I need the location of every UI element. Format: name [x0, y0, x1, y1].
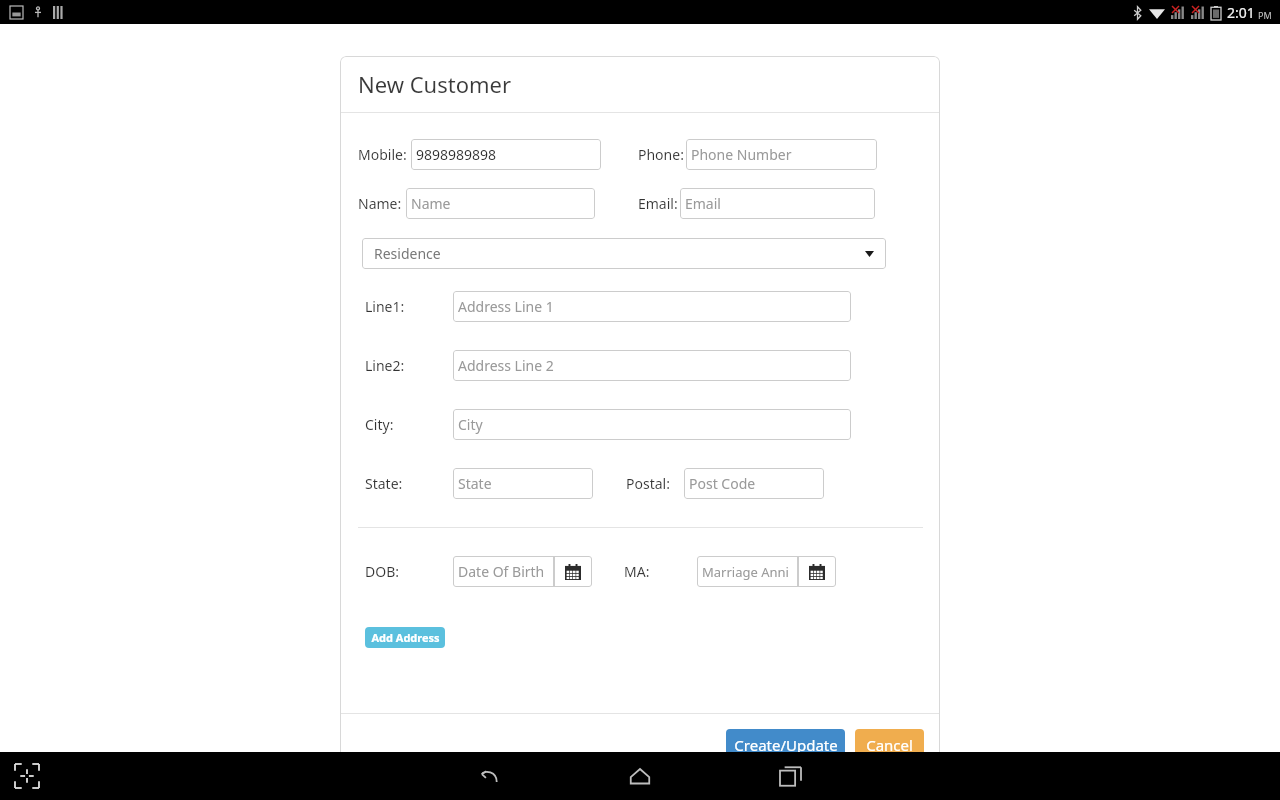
button[interactable]: Name — [406, 188, 595, 219]
staticText: PM — [1258, 9, 1272, 21]
staticText: City — [458, 415, 483, 434]
button[interactable]: City — [453, 409, 851, 440]
button[interactable]: Home — [617, 753, 663, 799]
button[interactable]: Fit to screen — [10, 759, 44, 793]
staticText: DOB: — [365, 562, 400, 581]
button[interactable]: Phone Number — [686, 139, 877, 170]
button[interactable]: Pick date — [798, 556, 836, 587]
staticText: 2:01 — [1227, 3, 1255, 22]
button[interactable]: Marriage Anni — [697, 556, 798, 587]
staticText: Address Line 1 — [458, 297, 554, 316]
staticText: MA: — [624, 562, 650, 581]
staticText: Create/Update — [734, 735, 838, 755]
button[interactable]: Email — [680, 188, 875, 219]
staticText: Post Code — [689, 474, 756, 493]
button[interactable]: 9898989898 — [411, 139, 601, 170]
staticText: 9898989898 — [416, 145, 497, 164]
staticText: Line2: — [365, 356, 405, 375]
staticText: State — [458, 474, 492, 493]
button[interactable]: Back — [467, 753, 513, 799]
staticText: City: — [365, 415, 394, 434]
button[interactable]: Add Address — [365, 627, 445, 648]
staticText: Postal: — [626, 474, 670, 493]
button[interactable]: State — [453, 468, 593, 499]
staticText: Line1: — [365, 297, 405, 316]
staticText: Name — [411, 194, 451, 213]
button[interactable]: Address Line 1 — [453, 291, 851, 322]
staticText: Mobile: — [358, 145, 407, 164]
staticText: Email: — [638, 194, 678, 213]
button[interactable]: Date Of Birth — [453, 556, 554, 587]
button[interactable]: Address Line 2 — [453, 350, 851, 381]
staticText: Address Line 2 — [458, 356, 554, 375]
button[interactable]: Recent apps — [767, 753, 813, 799]
staticText: Add Address — [371, 630, 440, 645]
button[interactable]: Residence — [362, 238, 886, 269]
staticText: State: — [365, 474, 403, 493]
staticText: Phone Number — [691, 145, 792, 164]
button[interactable]: Post Code — [684, 468, 824, 499]
button[interactable]: Pick date — [554, 556, 592, 587]
staticText: Marriage Anni — [702, 563, 789, 581]
button[interactable]: Create/Update — [726, 729, 845, 761]
button[interactable]: Cancel — [855, 729, 924, 761]
staticText: Name: — [358, 194, 402, 213]
staticText: Residence — [374, 244, 441, 263]
staticText: Date Of Birth — [458, 562, 545, 581]
staticText: Phone: — [638, 145, 684, 164]
staticText: Cancel — [866, 735, 913, 755]
staticText: Email — [685, 194, 721, 213]
staticText: New Customer — [358, 69, 512, 99]
